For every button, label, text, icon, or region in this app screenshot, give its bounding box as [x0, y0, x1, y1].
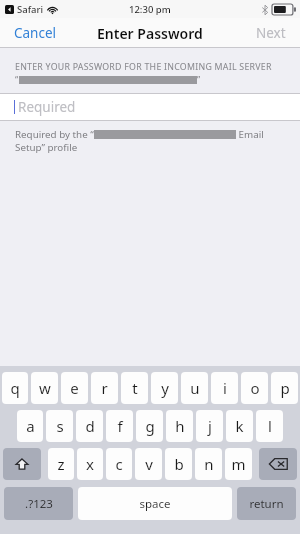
- staticText: i: [223, 378, 227, 398]
- staticText: space: [139, 496, 171, 512]
- staticText: t: [132, 378, 138, 398]
- button[interactable]: x: [77, 448, 103, 480]
- button[interactable]: Next: [242, 19, 300, 47]
- staticText: z: [57, 454, 65, 474]
- staticText: return: [249, 496, 284, 512]
- button[interactable]: n: [195, 448, 222, 480]
- staticText: d: [85, 416, 95, 436]
- button[interactable]: .?123: [4, 487, 73, 520]
- staticText: o: [250, 378, 260, 398]
- staticText: 12:30 pm: [129, 3, 171, 16]
- button[interactable]: Required: [0, 93, 300, 121]
- staticText: p: [280, 378, 290, 398]
- button[interactable]: f: [106, 410, 133, 442]
- staticText: e: [70, 378, 79, 398]
- staticText: f: [117, 416, 123, 436]
- button[interactable]: t: [121, 372, 148, 404]
- staticText: Setup” profile: [15, 141, 78, 154]
- staticText: j: [208, 416, 212, 436]
- staticText: g: [145, 416, 155, 436]
- staticText: “: [15, 74, 19, 86]
- button[interactable]: l: [256, 410, 283, 442]
- button[interactable]: space: [78, 487, 232, 520]
- button[interactable]: Shift: [3, 448, 41, 480]
- staticText: ”: [197, 74, 201, 86]
- button[interactable]: g: [136, 410, 163, 442]
- staticText: c: [115, 454, 123, 474]
- button[interactable]: d: [76, 410, 103, 442]
- button[interactable]: v: [135, 448, 162, 480]
- button[interactable]: p: [271, 372, 298, 404]
- staticText: Required: [18, 98, 76, 116]
- button[interactable]: i: [211, 372, 238, 404]
- staticText: Safari: [17, 3, 44, 16]
- staticText: w: [39, 378, 51, 398]
- staticText: n: [204, 454, 214, 474]
- staticText: k: [235, 416, 244, 436]
- staticText: .?123: [25, 496, 53, 512]
- button[interactable]: u: [181, 372, 208, 404]
- staticText: h: [175, 416, 185, 436]
- button[interactable]: y: [151, 372, 178, 404]
- staticText: Email: [236, 128, 264, 141]
- staticText: Enter Password: [97, 24, 203, 43]
- button[interactable]: k: [226, 410, 253, 442]
- staticText: l: [268, 416, 272, 436]
- button[interactable]: z: [48, 448, 74, 480]
- button[interactable]: q: [2, 372, 28, 404]
- staticText: b: [174, 454, 184, 474]
- staticText: y: [161, 378, 169, 398]
- button[interactable]: c: [106, 448, 132, 480]
- button[interactable]: return: [237, 487, 296, 520]
- button[interactable]: s: [46, 410, 73, 442]
- staticText: Cancel: [14, 24, 57, 42]
- staticText: Required by the “: [15, 128, 94, 141]
- staticText: Next: [256, 24, 286, 42]
- button[interactable]: b: [165, 448, 192, 480]
- staticText: v: [145, 454, 153, 474]
- staticText: q: [10, 378, 20, 398]
- button[interactable]: m: [225, 448, 252, 480]
- staticText: u: [190, 378, 200, 398]
- staticText: r: [101, 378, 108, 398]
- button[interactable]: e: [61, 372, 88, 404]
- button[interactable]: r: [91, 372, 118, 404]
- staticText: m: [231, 454, 246, 474]
- button[interactable]: w: [31, 372, 58, 404]
- button[interactable]: o: [241, 372, 268, 404]
- button[interactable]: Cancel: [0, 19, 71, 47]
- button[interactable]: j: [196, 410, 223, 442]
- staticText: ENTER YOUR PASSWORD FOR THE INCOMING MAI…: [15, 61, 272, 73]
- staticText: s: [56, 416, 64, 436]
- staticText: x: [86, 454, 94, 474]
- staticText: a: [26, 416, 35, 436]
- button[interactable]: h: [166, 410, 193, 442]
- button[interactable]: a: [17, 410, 43, 442]
- button[interactable]: Backspace: [259, 448, 297, 480]
